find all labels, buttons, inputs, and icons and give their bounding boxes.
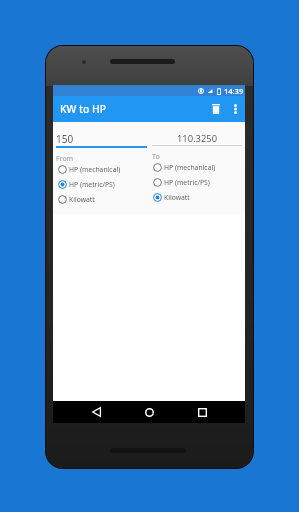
button[interactable]: HP (mechanical) xyxy=(53,162,149,177)
button[interactable]: HP (mechanical) xyxy=(149,160,245,175)
staticText: HP (metric/PS) xyxy=(69,180,115,189)
button[interactable]: HP (metric/PS) xyxy=(149,175,245,190)
staticText: 150 xyxy=(56,132,149,146)
staticText: Kilowatt xyxy=(69,195,95,204)
staticText: Kilowatt xyxy=(164,193,190,202)
staticText: To xyxy=(152,152,160,162)
button[interactable]: Kilowatt xyxy=(149,190,245,205)
button[interactable]: Back xyxy=(86,402,106,422)
staticText: HP (mechanical) xyxy=(69,165,121,174)
button[interactable]: Home xyxy=(139,402,159,422)
button[interactable]: HP (metric/PS) xyxy=(53,177,149,192)
button[interactable]: More options xyxy=(225,96,245,122)
staticText: KW to HP xyxy=(60,102,107,116)
button[interactable]: Delete xyxy=(206,96,225,122)
staticText: HP (mechanical) xyxy=(164,163,216,172)
button[interactable]: Recent apps xyxy=(192,402,212,422)
button[interactable]: Kilowatt xyxy=(53,192,149,207)
staticText: HP (metric/PS) xyxy=(164,178,210,187)
staticText: From xyxy=(56,154,74,164)
staticText: 14:39 xyxy=(224,86,244,96)
staticText: 110.3250 xyxy=(149,132,245,145)
